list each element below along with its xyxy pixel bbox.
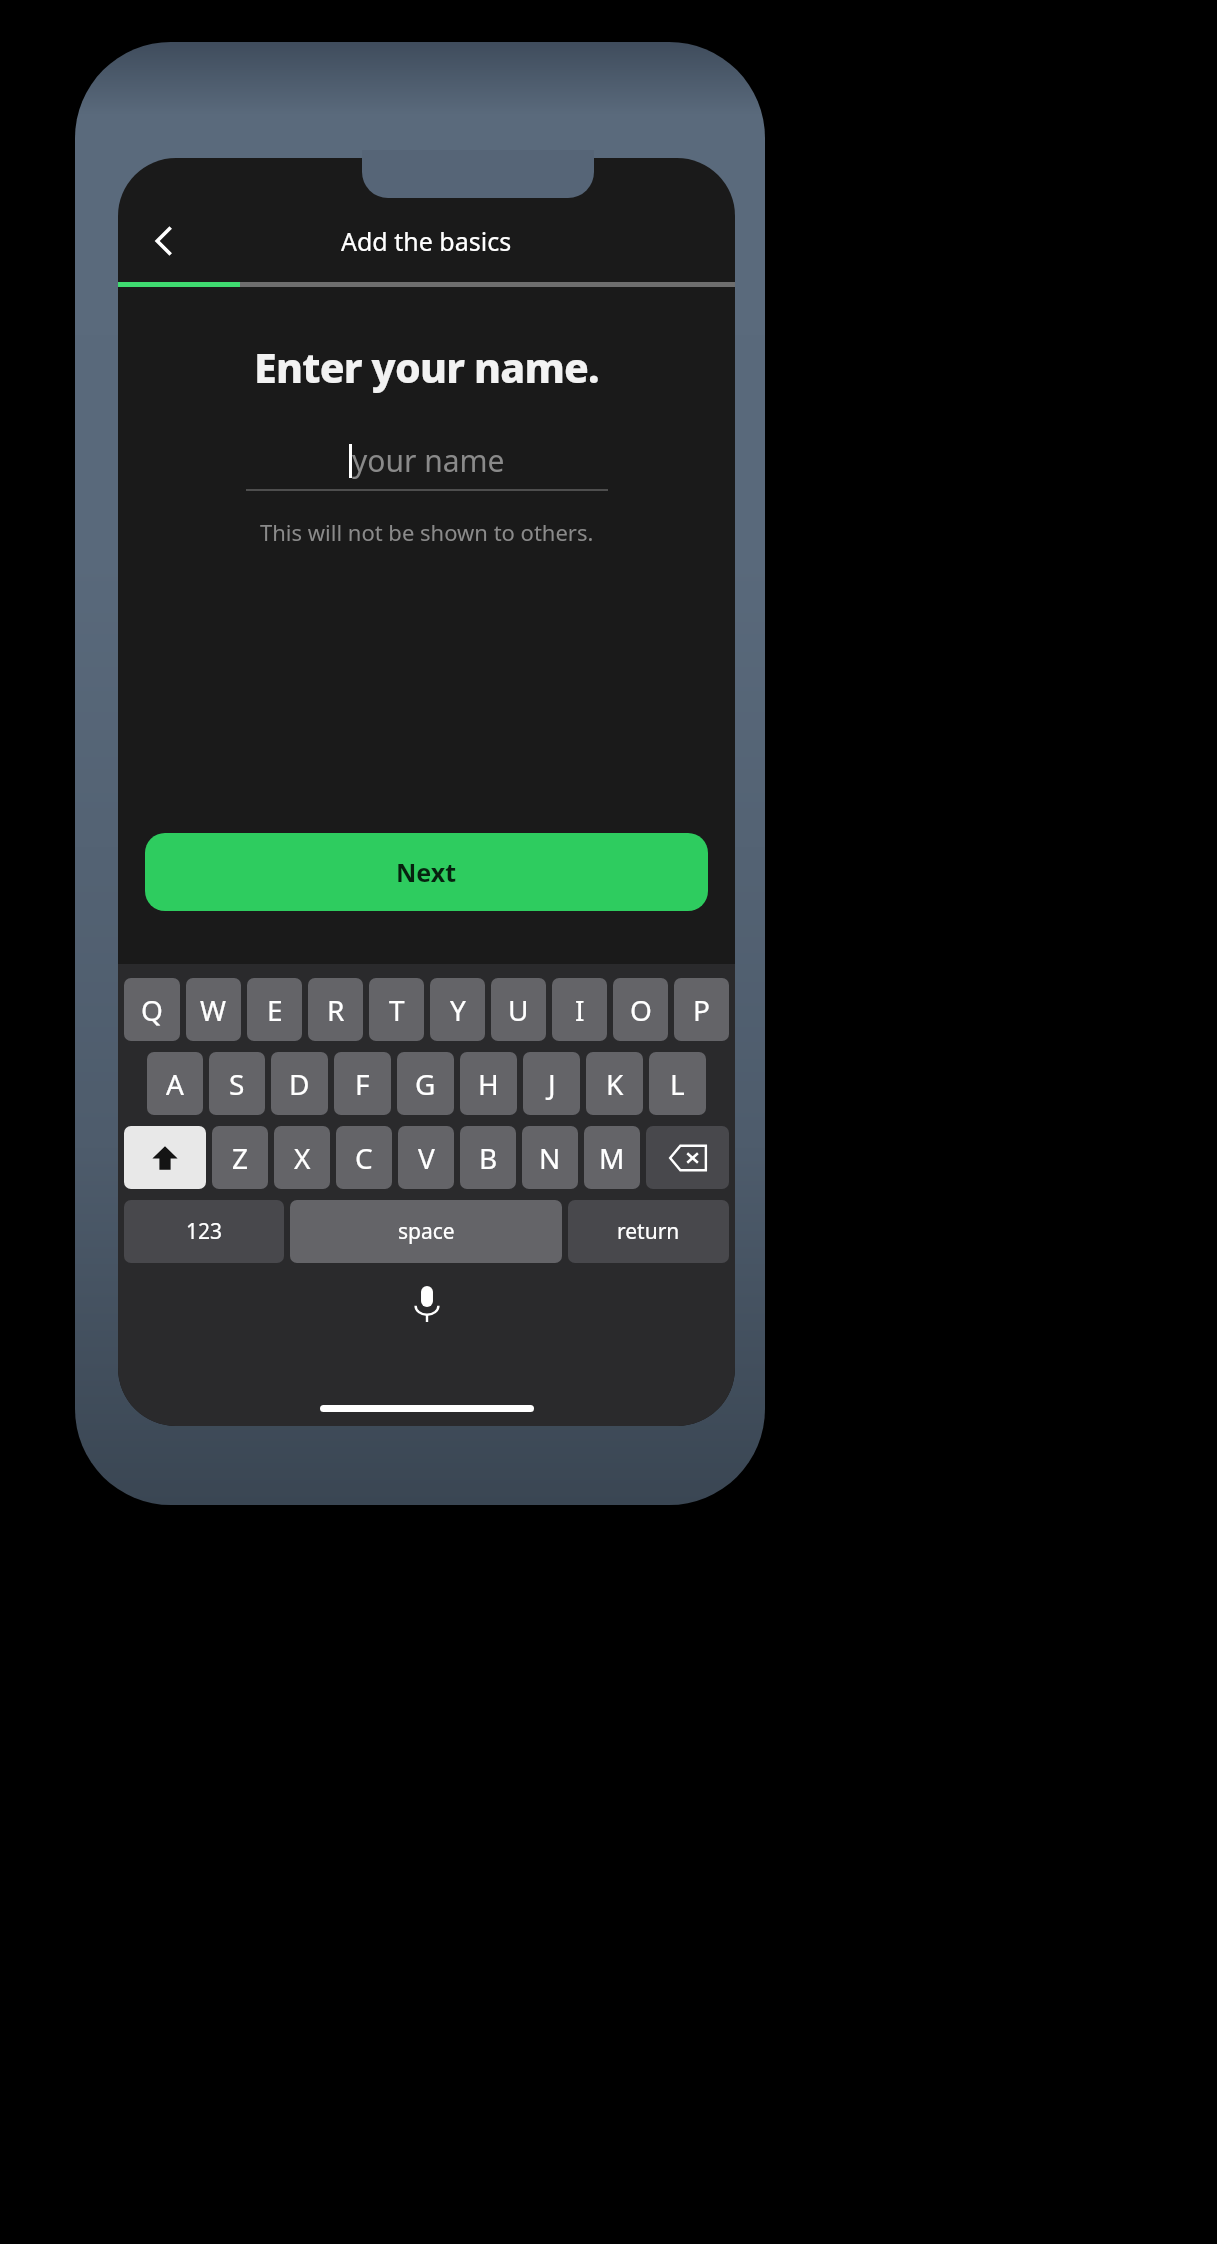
button[interactable]: X: [274, 1126, 330, 1189]
staticText: F: [355, 1065, 370, 1103]
button[interactable]: return: [568, 1200, 729, 1263]
staticText: Next: [396, 855, 457, 889]
button[interactable]: M: [584, 1126, 640, 1189]
staticText: Y: [450, 991, 466, 1029]
staticText: X: [294, 1139, 311, 1177]
staticText: C: [355, 1139, 373, 1177]
button[interactable]: Dictate: [404, 1281, 450, 1327]
button[interactable]: Backspace: [646, 1126, 729, 1189]
button[interactable]: G: [397, 1052, 454, 1115]
staticText: Q: [141, 991, 163, 1029]
button[interactable]: A: [147, 1052, 203, 1115]
staticText: T: [389, 991, 405, 1029]
button[interactable]: J: [523, 1052, 580, 1115]
staticText: G: [415, 1065, 436, 1103]
button[interactable]: 123: [124, 1200, 284, 1263]
button[interactable]: F: [334, 1052, 391, 1115]
button[interactable]: Back: [132, 209, 196, 273]
staticText: W: [200, 991, 227, 1029]
button[interactable]: Shift: [124, 1126, 206, 1189]
button[interactable]: Q: [124, 978, 180, 1041]
button[interactable]: space: [290, 1200, 562, 1263]
button[interactable]: U: [491, 978, 546, 1041]
staticText: Add the basics: [341, 224, 512, 258]
button[interactable]: E: [247, 978, 302, 1041]
staticText: return: [617, 1217, 680, 1246]
button[interactable]: K: [586, 1052, 643, 1115]
staticText: O: [630, 991, 652, 1029]
staticText: L: [670, 1065, 685, 1103]
button[interactable]: your name: [246, 431, 608, 491]
staticText: N: [539, 1139, 561, 1177]
staticText: Enter your name.: [254, 339, 599, 395]
staticText: I: [575, 991, 585, 1029]
staticText: M: [599, 1139, 625, 1177]
button[interactable]: O: [613, 978, 668, 1041]
staticText: S: [229, 1065, 245, 1103]
button[interactable]: N: [522, 1126, 578, 1189]
button[interactable]: B: [460, 1126, 516, 1189]
button[interactable]: D: [271, 1052, 328, 1115]
button[interactable]: S: [209, 1052, 265, 1115]
button[interactable]: Y: [430, 978, 485, 1041]
staticText: U: [508, 991, 529, 1029]
staticText: V: [418, 1139, 435, 1177]
staticText: 123: [186, 1217, 223, 1246]
staticText: Z: [232, 1139, 249, 1177]
staticText: H: [478, 1065, 499, 1103]
button[interactable]: V: [398, 1126, 454, 1189]
staticText: A: [166, 1065, 184, 1103]
button[interactable]: W: [186, 978, 241, 1041]
button[interactable]: I: [552, 978, 607, 1041]
button[interactable]: L: [649, 1052, 706, 1115]
staticText: K: [606, 1065, 624, 1103]
button[interactable]: H: [460, 1052, 517, 1115]
staticText: B: [479, 1139, 498, 1177]
staticText: D: [289, 1065, 310, 1103]
staticText: your name: [352, 440, 505, 481]
staticText: R: [327, 991, 345, 1029]
staticText: E: [267, 991, 283, 1029]
staticText: This will not be shown to others.: [260, 517, 594, 547]
button[interactable]: C: [336, 1126, 392, 1189]
button[interactable]: R: [308, 978, 363, 1041]
button[interactable]: Next: [145, 833, 708, 911]
staticText: space: [398, 1217, 455, 1246]
staticText: J: [548, 1065, 556, 1103]
button[interactable]: P: [674, 978, 729, 1041]
button[interactable]: T: [369, 978, 424, 1041]
button[interactable]: Z: [212, 1126, 268, 1189]
staticText: P: [693, 991, 710, 1029]
